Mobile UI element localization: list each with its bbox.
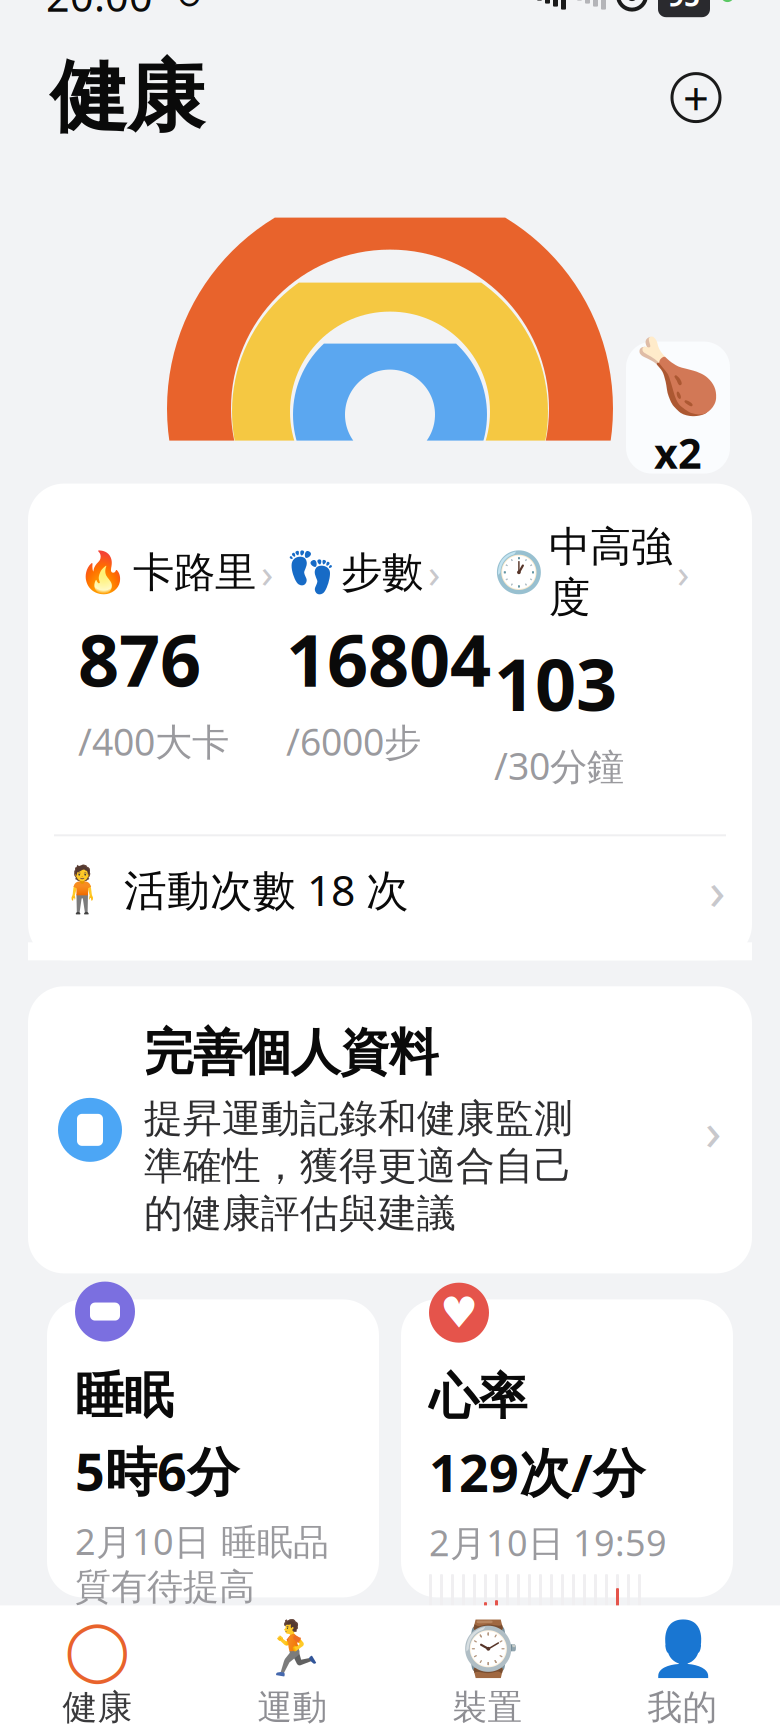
staticText: 129次/分 xyxy=(429,1437,645,1506)
staticText: 103 xyxy=(494,635,617,731)
button[interactable]: ⌚ xyxy=(390,1619,585,1731)
staticText: 完善個人資料 xyxy=(144,1022,438,1083)
staticText: 睡眠 xyxy=(75,1366,173,1426)
staticText: 2月10日 19:59 xyxy=(429,1518,667,1566)
staticText: 🔥 xyxy=(78,549,128,595)
staticText: › xyxy=(428,546,440,599)
staticText: 提昇運動記錄和健康監測準確性，獲得更適合自己的健康評估與建議 xyxy=(144,1095,573,1237)
staticText: x2 xyxy=(654,425,702,480)
staticText: 👣 xyxy=(286,549,336,595)
staticText: 中高強度 xyxy=(549,522,672,623)
staticText: ⌚ xyxy=(454,1619,520,1679)
staticText: 運動 xyxy=(257,1686,327,1729)
button[interactable]: 👤 xyxy=(585,1619,780,1731)
staticText: /400大卡 xyxy=(78,716,229,766)
staticText: 2月10日 睡眠品質有待提高 xyxy=(75,1517,329,1609)
staticText: ♥ xyxy=(440,1288,478,1337)
staticText: 🕐 xyxy=(494,549,544,595)
staticText: 活動次數 18 次 xyxy=(124,861,409,918)
button[interactable]: 🏃 xyxy=(195,1619,390,1731)
staticText: › xyxy=(705,1094,722,1165)
staticText: /6000步 xyxy=(286,716,421,766)
staticText: 🧍 xyxy=(54,863,110,915)
staticText: 16804 xyxy=(286,611,491,706)
staticText: 卡路里 xyxy=(133,547,256,598)
staticText: › xyxy=(677,546,689,599)
staticText: 95 xyxy=(668,0,700,14)
staticText: ◯ xyxy=(64,1616,130,1682)
staticText: 步數 xyxy=(341,547,423,598)
button[interactable]: ♥ xyxy=(401,1299,733,1597)
staticText: 裝置 xyxy=(452,1686,522,1729)
staticText: 健康 xyxy=(50,50,204,145)
staticText: /30分鐘 xyxy=(494,741,624,790)
staticText: 876 xyxy=(78,611,201,706)
staticText: 👤 xyxy=(649,1619,715,1679)
staticText: 健康 xyxy=(62,1686,132,1729)
button[interactable]: 獎章 乘二 xyxy=(626,342,730,474)
staticText: 5時6分 xyxy=(75,1436,239,1505)
button[interactable]: 🔥 xyxy=(78,546,286,766)
button[interactable]: 🕐 xyxy=(494,522,702,790)
staticText: 我的 xyxy=(647,1686,717,1729)
staticText: 🍗 xyxy=(633,335,723,417)
staticText: ↻ ··· xyxy=(153,0,248,18)
button[interactable]: 完善個人資料 xyxy=(28,986,752,1273)
staticText: 20:00 xyxy=(46,0,153,23)
button[interactable]: 新增 xyxy=(662,64,730,132)
button[interactable]: ◯ xyxy=(0,1619,195,1731)
staticText: 心率 xyxy=(429,1367,527,1427)
staticText: › xyxy=(261,546,273,599)
button[interactable]: 👣 xyxy=(286,546,494,766)
staticText: › xyxy=(709,854,726,925)
button[interactable]: 睡眠 xyxy=(47,1299,379,1597)
button[interactable]: 🧍 xyxy=(28,836,752,942)
staticText: + xyxy=(683,67,709,128)
staticText: 🏃 xyxy=(259,1619,325,1679)
